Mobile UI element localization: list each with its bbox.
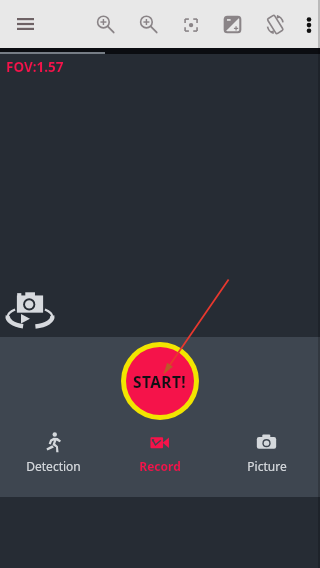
button[interactable]: START! [121, 342, 199, 420]
staticText: Detection [26, 458, 81, 474]
button[interactable]: Record [106, 429, 213, 481]
button[interactable]: Detection [0, 429, 106, 481]
button[interactable]: Switch camera [4, 283, 56, 331]
button[interactable]: Auto focus [169, 0, 211, 48]
button[interactable]: Exposure [211, 0, 253, 48]
button[interactable]: Zoom out [127, 0, 169, 48]
staticText: FOV:1.57 [6, 58, 64, 76]
staticText: Picture [247, 458, 287, 474]
button[interactable]: Picture [213, 429, 320, 481]
staticText: START! [133, 371, 187, 392]
button[interactable]: More options [294, 0, 320, 48]
button[interactable]: Menu [4, 0, 46, 48]
staticText: Record [139, 458, 181, 474]
button[interactable]: Screen rotation [253, 0, 295, 48]
button[interactable]: Zoom in [84, 0, 126, 48]
